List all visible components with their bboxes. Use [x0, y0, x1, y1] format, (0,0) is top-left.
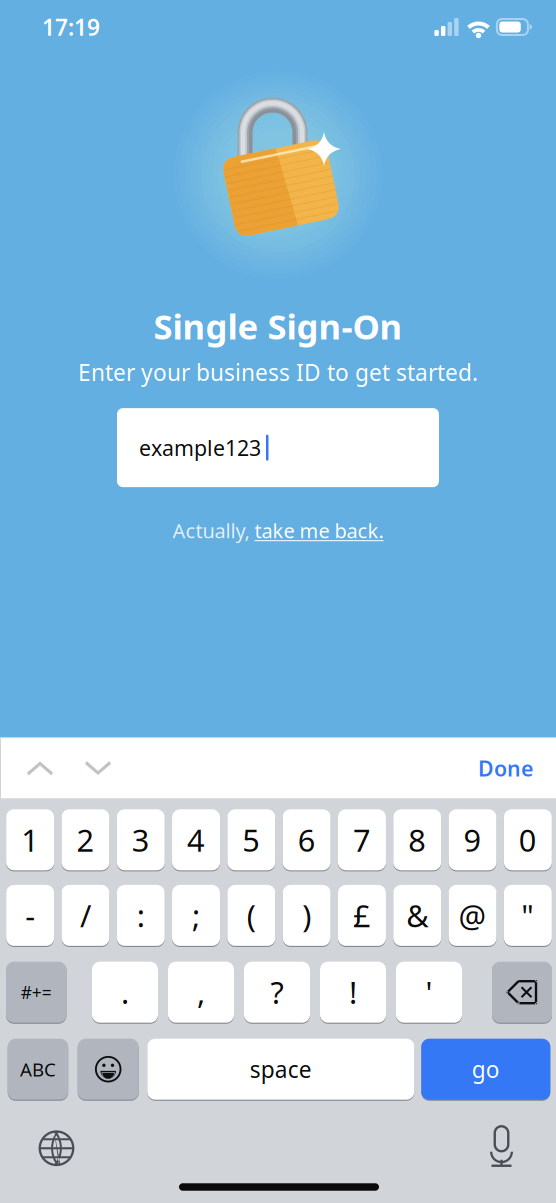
button[interactable]: ! — [320, 961, 386, 1023]
button[interactable]: go — [421, 1038, 550, 1100]
staticText: Single Sign-On — [153, 303, 402, 349]
staticText: 9 — [464, 819, 482, 860]
button[interactable]: example123 — [117, 408, 439, 487]
staticText: go — [472, 1054, 500, 1084]
staticText: 6 — [298, 819, 316, 860]
button[interactable]: 0 — [504, 809, 552, 871]
button[interactable]: , — [168, 961, 234, 1023]
staticText: 2 — [76, 819, 94, 860]
staticText: " — [521, 895, 534, 936]
staticText: ' — [425, 972, 432, 1012]
staticText: Done — [478, 754, 533, 782]
button[interactable]: " — [504, 884, 552, 946]
button[interactable]: Next keyboard — [22, 1108, 90, 1175]
staticText: ! — [349, 972, 357, 1012]
staticText: : — [137, 895, 145, 936]
staticText: example123 — [139, 433, 261, 462]
button[interactable]: Actually, — [164, 513, 391, 548]
staticText: #+= — [21, 981, 52, 1004]
button[interactable]: 6 — [283, 809, 331, 871]
staticText: £ — [353, 895, 371, 936]
staticText: ) — [302, 895, 311, 936]
button[interactable]: & — [393, 884, 441, 946]
button[interactable]: ) — [283, 884, 331, 946]
staticText: & — [406, 895, 428, 936]
staticText: ABC — [20, 1057, 56, 1082]
staticText: - — [25, 895, 35, 936]
button[interactable]: Dictate — [470, 1107, 532, 1177]
button[interactable]: ' — [396, 961, 462, 1023]
button[interactable]: #+= — [6, 961, 66, 1023]
staticText: Actually, — [172, 517, 254, 544]
staticText: 7 — [353, 819, 371, 860]
button[interactable]: space — [147, 1038, 414, 1100]
button[interactable]: : — [117, 884, 165, 946]
staticText: 3 — [132, 819, 150, 860]
staticText: , — [197, 972, 205, 1012]
staticText: 4 — [187, 819, 205, 860]
button[interactable]: 3 — [117, 809, 165, 871]
button[interactable]: Delete — [492, 961, 552, 1023]
staticText: take me back. — [254, 517, 383, 544]
button[interactable]: ; — [172, 884, 220, 946]
staticText: 17:19 — [42, 12, 100, 42]
button[interactable]: 4 — [172, 809, 220, 871]
button[interactable]: ABC — [8, 1038, 68, 1100]
staticText: ? — [270, 972, 283, 1012]
button[interactable]: 2 — [61, 809, 109, 871]
staticText: 0 — [519, 819, 537, 860]
button[interactable]: / — [61, 884, 109, 946]
staticText: ( — [247, 895, 256, 936]
button[interactable]: 9 — [449, 809, 497, 871]
button[interactable]: Previous field — [1, 738, 69, 798]
staticText: @ — [459, 895, 487, 936]
button[interactable]: ( — [227, 884, 275, 946]
button[interactable]: - — [6, 884, 54, 946]
button[interactable]: 1 — [6, 809, 54, 871]
staticText: 5 — [242, 819, 260, 860]
button[interactable]: ? — [244, 961, 310, 1023]
button[interactable]: 5 — [227, 809, 275, 871]
staticText: . — [121, 972, 129, 1012]
button[interactable]: Done — [454, 738, 556, 798]
button[interactable]: Emoji — [78, 1038, 139, 1100]
staticText: 8 — [408, 819, 426, 860]
button[interactable]: @ — [449, 884, 497, 946]
button[interactable]: . — [92, 961, 158, 1023]
staticText: Enter your business ID to get started. — [78, 357, 478, 387]
staticText: space — [250, 1054, 312, 1084]
staticText: / — [80, 895, 91, 936]
button[interactable]: 8 — [393, 809, 441, 871]
button[interactable]: £ — [338, 884, 386, 946]
staticText: 1 — [21, 819, 39, 860]
staticText: ; — [192, 895, 200, 936]
button[interactable]: 7 — [338, 809, 386, 871]
button[interactable]: Next field — [69, 738, 127, 798]
